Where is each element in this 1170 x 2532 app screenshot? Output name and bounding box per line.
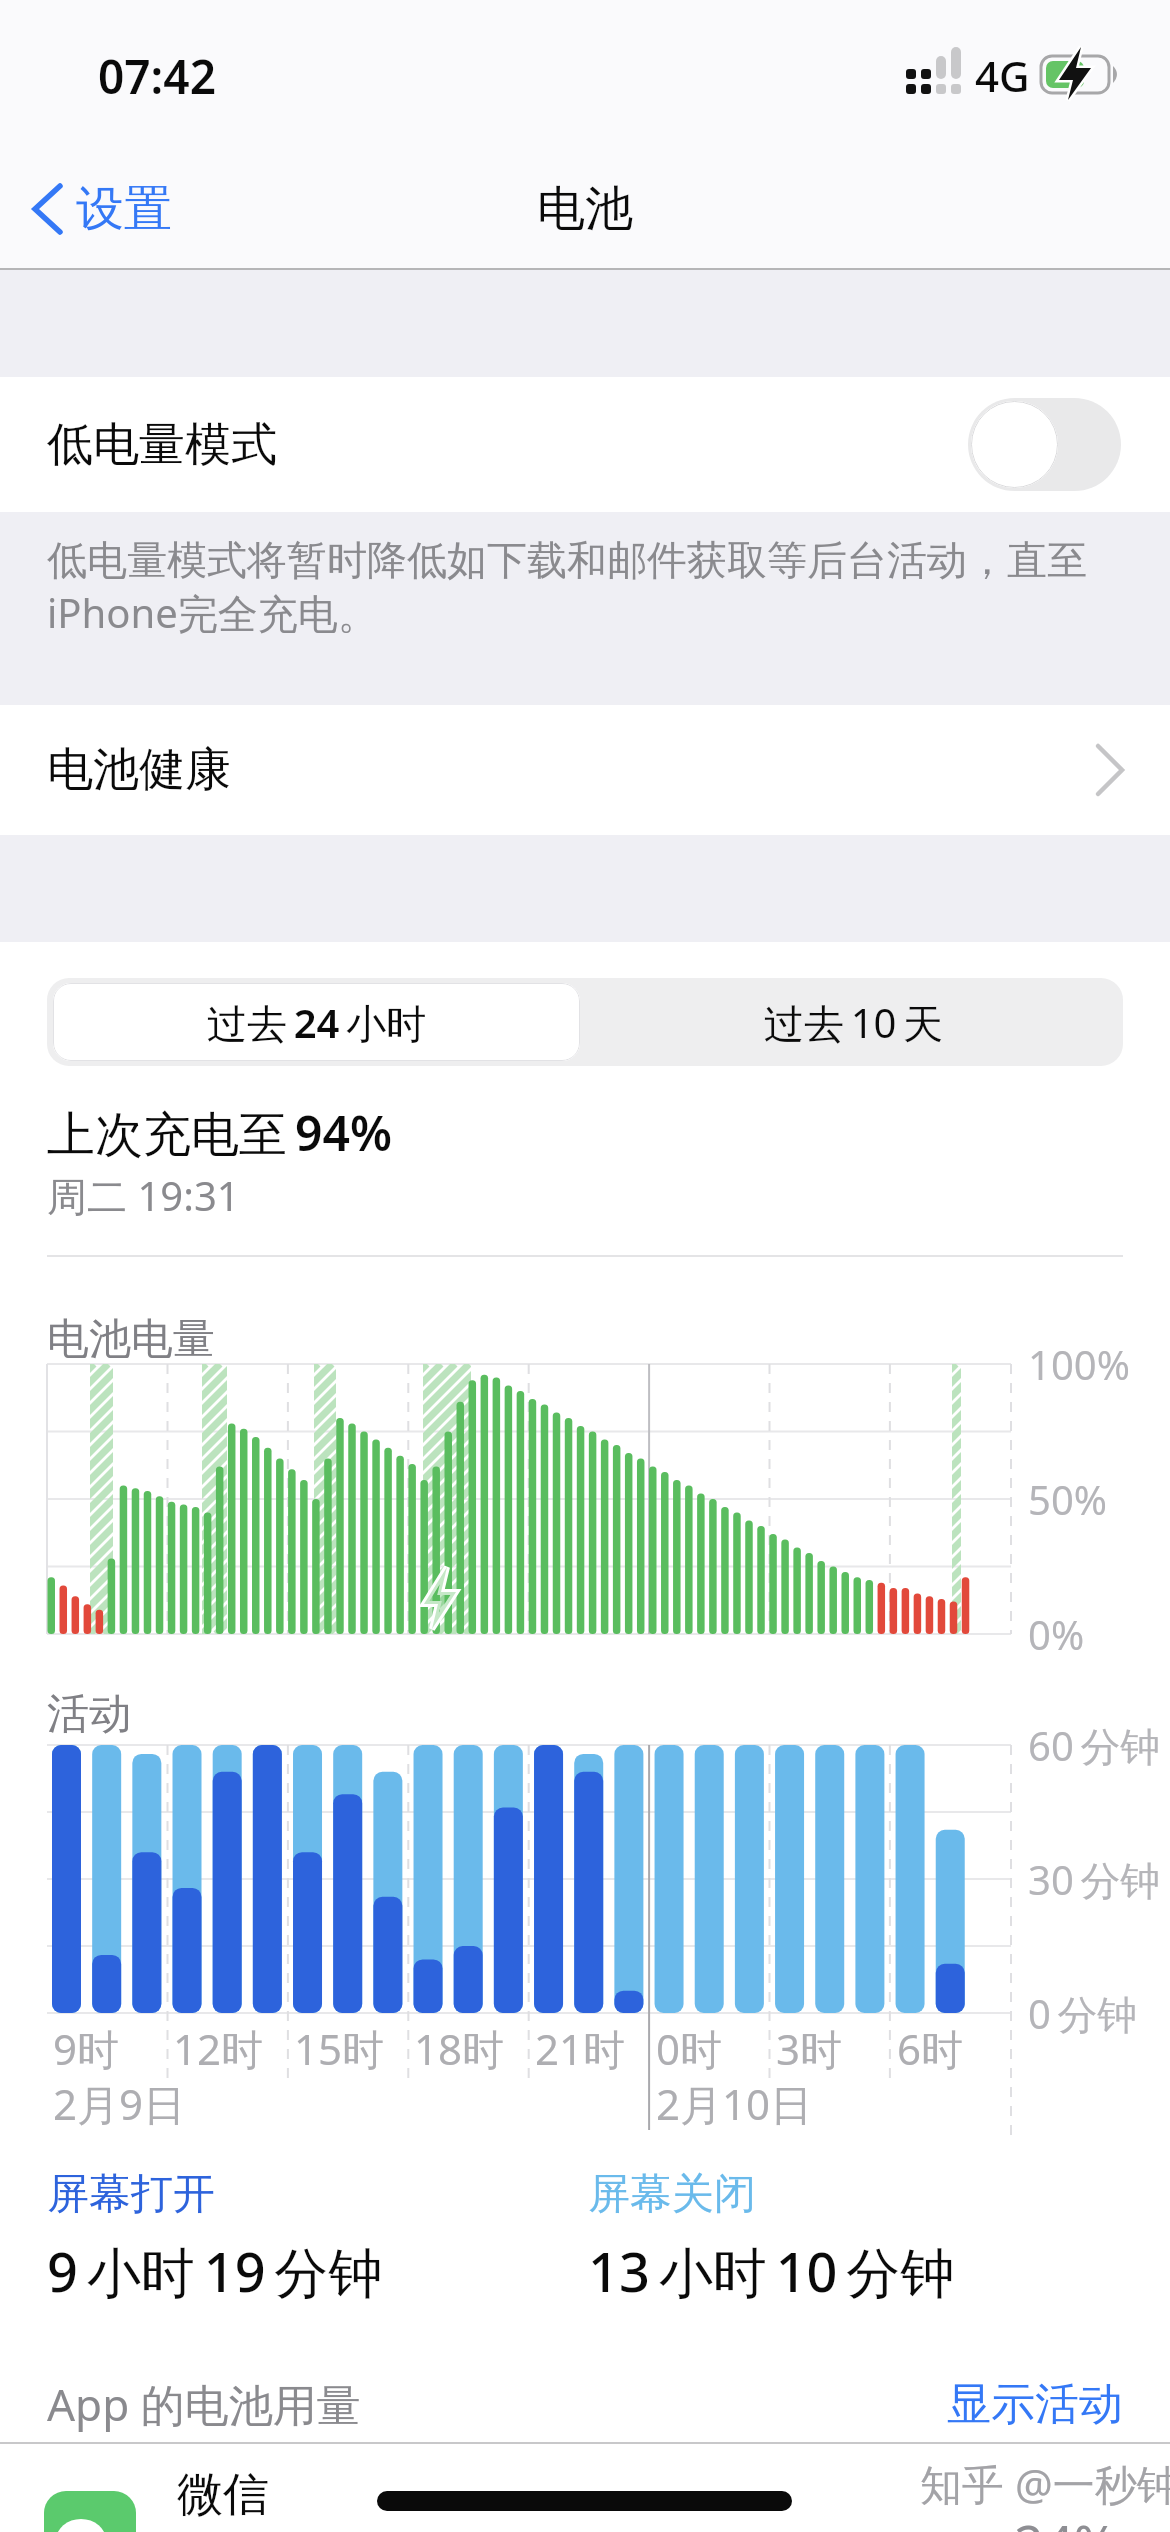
staticText: 6时 [897, 2020, 964, 2077]
staticText: 2月10日 [656, 2075, 813, 2132]
staticText: iPhone完全充电。 [47, 585, 378, 640]
staticText: 上次充电至 94% [47, 1100, 392, 1166]
staticText: 显示活动 [947, 2377, 1123, 2432]
button[interactable]: 低电量模式 [0, 377, 1170, 512]
staticText: 07:42 [98, 45, 216, 108]
staticText: 21时 [535, 2020, 626, 2077]
staticText: 30 分钟 [1028, 1852, 1161, 1907]
staticText: 13 小时 10 分钟 [588, 2234, 955, 2308]
staticText: 微信 [177, 2466, 269, 2524]
staticText: 3时 [776, 2020, 843, 2077]
staticText: 9时 [53, 2020, 120, 2077]
staticText: 18时 [414, 2020, 505, 2077]
button[interactable]: 设置 [20, 174, 210, 244]
staticText: 0% [1028, 1607, 1085, 1661]
staticText: 9 小时 19 分钟 [47, 2234, 383, 2308]
staticText: 低电量模式 [47, 416, 277, 474]
staticText: 50% [1028, 1472, 1107, 1526]
staticText: 15时 [294, 2020, 385, 2077]
staticText: 过去 24 小时 [207, 995, 427, 1050]
staticText: 周二 19:31 [47, 1168, 240, 1223]
button[interactable]: 过去 10 天 [585, 978, 1123, 1066]
staticText: 设置 [76, 179, 172, 239]
staticText: 电池 [537, 179, 633, 239]
staticText: 活动 [47, 1688, 131, 1741]
staticText: 2月9日 [53, 2075, 186, 2132]
staticText: 4G [975, 47, 1030, 104]
staticText: 过去 10 天 [764, 995, 944, 1050]
staticText: 100% [1028, 1337, 1130, 1391]
button[interactable]: 电池健康 [0, 705, 1170, 835]
staticText: 屏幕关闭 [588, 2168, 756, 2221]
staticText: 0 分钟 [1028, 1986, 1138, 2041]
staticText: 电池健康 [47, 741, 231, 799]
staticText: 知乎 @一秒钟 [920, 2455, 1170, 2512]
button[interactable] [968, 398, 1121, 491]
button[interactable]: 过去 24 小时 [53, 983, 580, 1061]
staticText: 24% [1014, 2508, 1117, 2532]
button[interactable]: 显示活动 [943, 2374, 1123, 2434]
staticText: 低电量模式将暂时降低如下载和邮件获取等后台活动，直至 [47, 535, 1087, 585]
staticText: 0时 [656, 2020, 723, 2077]
button[interactable]: 微信 [0, 2445, 1170, 2532]
staticText: App 的电池用量 [47, 2374, 361, 2434]
staticText: 12时 [173, 2020, 264, 2077]
staticText: 60 分钟 [1028, 1718, 1161, 1773]
staticText: 电池电量 [47, 1313, 215, 1366]
staticText: 屏幕打开 [47, 2168, 215, 2221]
